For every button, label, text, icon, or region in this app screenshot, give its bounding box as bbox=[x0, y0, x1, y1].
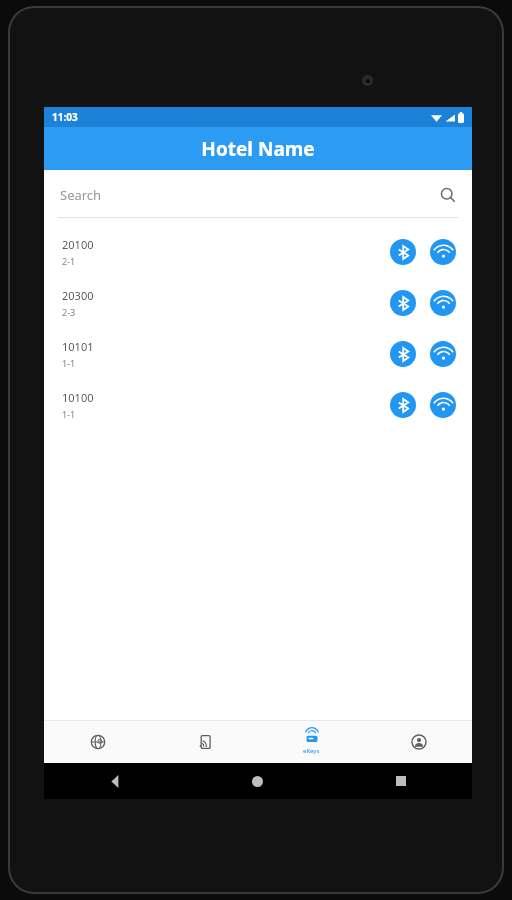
staticText: 11:03 bbox=[52, 110, 78, 124]
button[interactable]: Wi-Fi bbox=[430, 239, 456, 265]
button[interactable]: Bluetooth bbox=[390, 392, 416, 418]
other: Home bbox=[252, 776, 263, 787]
button[interactable]: Bluetooth bbox=[390, 239, 416, 265]
staticText: Hotel Name bbox=[201, 136, 315, 162]
button[interactable]: eKeys bbox=[258, 721, 365, 763]
staticText: 1-1 bbox=[62, 357, 76, 369]
button[interactable]: Bluetooth bbox=[390, 341, 416, 367]
button[interactable]: Wi-Fi bbox=[430, 392, 456, 418]
button[interactable]: 20300 bbox=[44, 277, 472, 328]
button[interactable]: Wi-Fi bbox=[430, 290, 456, 316]
staticText: 10101 bbox=[62, 339, 94, 354]
staticText: 20300 bbox=[62, 288, 94, 303]
staticText: 1-1 bbox=[62, 408, 76, 420]
staticText: 2-1 bbox=[62, 255, 76, 267]
button[interactable]: 10101 bbox=[44, 328, 472, 379]
staticText: eKeys bbox=[303, 747, 320, 755]
button[interactable]: Account bbox=[365, 721, 472, 763]
other: Back bbox=[109, 775, 122, 788]
other: Search bbox=[440, 187, 456, 203]
button[interactable]: Device bbox=[151, 721, 258, 763]
staticText: 10100 bbox=[62, 390, 94, 405]
button[interactable]: 20100 bbox=[44, 226, 472, 277]
button[interactable]: 10100 bbox=[44, 379, 472, 430]
button[interactable]: Search bbox=[44, 180, 472, 210]
button[interactable]: Bluetooth bbox=[390, 290, 416, 316]
button[interactable]: Wi-Fi bbox=[430, 341, 456, 367]
staticText: Search bbox=[60, 186, 440, 204]
staticText: 20100 bbox=[62, 237, 94, 252]
button[interactable]: Discover bbox=[44, 721, 151, 763]
staticText: 2-3 bbox=[62, 306, 76, 318]
